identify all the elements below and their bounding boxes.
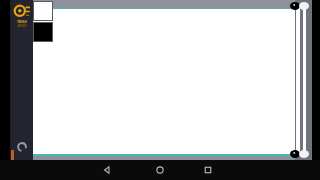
button[interactable]: Drawing canvas [33,9,295,154]
button[interactable]: Recent apps [202,164,214,176]
button[interactable]: Vertical scrollbar [296,4,300,156]
button[interactable]: Selection handle bottom [290,150,300,158]
button[interactable]: Resize handle top [299,2,309,10]
button[interactable]: Background colour black [33,22,53,42]
staticText: MENU [17,24,27,28]
staticText: TOOLS [17,20,27,24]
button[interactable]: Selection handle top [290,2,300,10]
button[interactable]: Resize handle bottom [299,150,309,158]
button[interactable]: Home [154,164,166,176]
button[interactable]: App menu [13,3,30,20]
button[interactable]: Back [101,164,113,176]
button[interactable]: Undo [15,140,29,154]
button[interactable]: Foreground colour white [33,1,53,21]
